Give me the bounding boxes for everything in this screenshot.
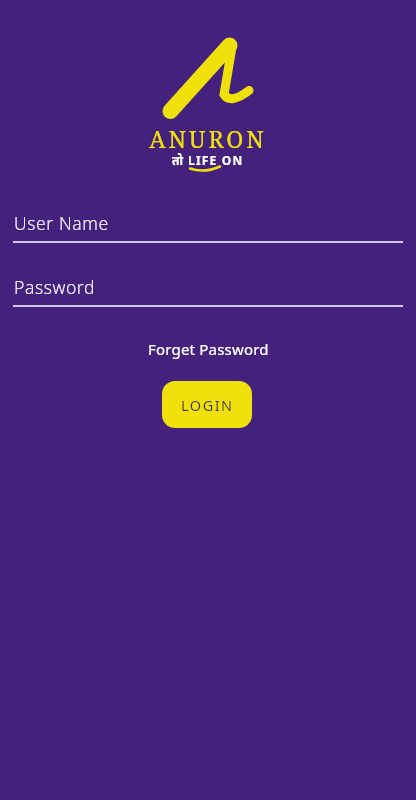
staticText: LIFE ON bbox=[188, 152, 244, 168]
staticText: LOGIN bbox=[181, 395, 234, 415]
button[interactable]: Forget Password bbox=[148, 339, 269, 359]
button[interactable]: User Name bbox=[13, 212, 403, 242]
staticText: Password bbox=[14, 275, 96, 299]
staticText: तो bbox=[172, 152, 183, 168]
button[interactable]: Password bbox=[13, 276, 403, 306]
staticText: User Name bbox=[14, 211, 109, 235]
staticText: ANURON bbox=[0, 123, 416, 154]
button[interactable]: LOGIN bbox=[162, 381, 252, 428]
